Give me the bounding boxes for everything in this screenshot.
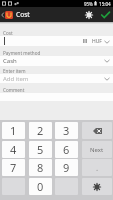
button[interactable]: 0: [29, 178, 52, 195]
button[interactable]: Navigate up: [0, 7, 5, 22]
button[interactable]: 3: [55, 122, 78, 139]
button[interactable]: Save: [97, 7, 113, 22]
staticText: Cash: [3, 57, 17, 65]
button[interactable]: HUF: [92, 38, 110, 45]
button[interactable]: Next: [82, 141, 112, 158]
button[interactable]: 8: [29, 159, 52, 176]
button[interactable]: 1: [2, 122, 25, 139]
staticText: 0: [37, 179, 44, 194]
staticText: HUF: [92, 38, 102, 45]
staticText: 4: [10, 142, 17, 157]
button[interactable]: 7: [2, 159, 25, 176]
button[interactable]: Settings: [81, 7, 97, 22]
staticText: 6: [63, 142, 70, 157]
button[interactable]: 6: [55, 141, 78, 158]
staticText: Next: [90, 146, 104, 154]
staticText: Cost: [16, 10, 30, 19]
staticText: 3: [63, 123, 70, 138]
staticText: 7: [10, 160, 17, 175]
staticText: Cost: [3, 30, 13, 36]
button[interactable]: Backspace: [82, 122, 112, 139]
staticText: 15:04: [99, 1, 111, 7]
staticText: 1: [10, 123, 17, 138]
button[interactable]: Keyboard settings: [82, 178, 112, 195]
button[interactable]: Add item: [3, 74, 110, 83]
button[interactable]: 2: [29, 122, 52, 139]
button[interactable]: Cash: [3, 56, 110, 66]
button[interactable]: Calculator: [82, 37, 88, 45]
staticText: .: [96, 162, 99, 173]
staticText: 9: [63, 160, 70, 175]
staticText: 8: [37, 160, 44, 175]
staticText: 95%: [84, 1, 93, 7]
staticText: Comment: [3, 87, 25, 93]
button[interactable]: 5: [29, 141, 52, 158]
staticText: Payment method: [3, 50, 41, 56]
button[interactable]: 9: [55, 159, 78, 176]
staticText: Enter item: [3, 68, 26, 74]
staticText: Add item: [3, 75, 29, 83]
button[interactable]: 4: [2, 141, 25, 158]
staticText: 5: [37, 142, 44, 157]
staticText: 2: [37, 123, 44, 138]
